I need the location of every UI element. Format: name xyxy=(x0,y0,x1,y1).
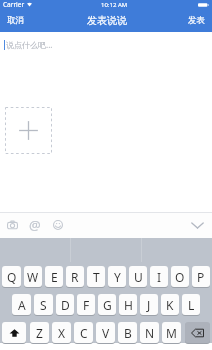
staticText: J xyxy=(147,297,151,313)
button[interactable]: I xyxy=(150,266,168,287)
button[interactable]: C xyxy=(74,322,93,343)
staticText: 说点什么吧... xyxy=(6,39,53,50)
button[interactable]: E xyxy=(45,266,63,287)
button[interactable]: D xyxy=(56,294,74,315)
staticText: F xyxy=(83,297,90,313)
staticText: @ xyxy=(29,216,41,234)
staticText: I xyxy=(157,269,162,285)
staticText: 发表说说 xyxy=(87,14,127,27)
button[interactable]: Camera xyxy=(2,212,22,238)
button[interactable]: G xyxy=(98,294,116,315)
button[interactable]: N xyxy=(140,322,159,343)
button[interactable]: K xyxy=(161,294,179,315)
staticText: A xyxy=(18,297,26,313)
staticText: C xyxy=(80,325,88,341)
staticText: O xyxy=(175,269,185,285)
staticText: N xyxy=(145,325,155,341)
button[interactable]: W xyxy=(24,266,42,287)
button[interactable]: 取消 xyxy=(0,11,33,30)
button[interactable]: A xyxy=(12,294,31,315)
staticText: Carrier xyxy=(3,0,25,9)
staticText: M xyxy=(166,325,177,341)
button[interactable]: Emoji xyxy=(48,212,68,238)
staticText: 取消 xyxy=(7,15,24,26)
staticText: W xyxy=(27,269,39,285)
button[interactable]: H xyxy=(119,294,137,315)
button[interactable]: U xyxy=(129,266,147,287)
staticText: X xyxy=(58,325,66,341)
button[interactable]: Shift xyxy=(2,322,26,343)
staticText: L xyxy=(188,297,195,313)
staticText: V xyxy=(102,325,110,341)
button[interactable]: M xyxy=(162,322,181,343)
button[interactable]: Z xyxy=(30,322,49,343)
button[interactable]: Backspace xyxy=(185,322,210,343)
button[interactable]: L xyxy=(182,294,200,315)
staticText: E xyxy=(51,269,58,285)
button[interactable]: Add photo xyxy=(5,107,52,154)
staticText: Z xyxy=(36,325,43,341)
staticText: H xyxy=(124,297,133,313)
staticText: G xyxy=(103,297,112,313)
button[interactable]: Mention xyxy=(25,212,45,238)
button[interactable]: J xyxy=(140,294,158,315)
button[interactable]: B xyxy=(118,322,137,343)
staticText: R xyxy=(71,269,79,285)
staticText: P xyxy=(197,269,205,285)
button[interactable]: X xyxy=(52,322,71,343)
button[interactable]: O xyxy=(171,266,189,287)
staticText: Y xyxy=(114,269,121,285)
button[interactable]: Hide keyboard xyxy=(184,212,211,238)
button[interactable]: Y xyxy=(108,266,126,287)
button[interactable]: P xyxy=(192,266,210,287)
button[interactable]: Q xyxy=(2,266,21,287)
button[interactable]: R xyxy=(66,266,84,287)
staticText: S xyxy=(40,297,47,313)
button[interactable]: S xyxy=(34,294,53,315)
staticText: 10:12 AM xyxy=(101,1,128,9)
button[interactable]: F xyxy=(77,294,95,315)
staticText: T xyxy=(93,269,100,285)
button[interactable]: V xyxy=(96,322,115,343)
staticText: B xyxy=(124,325,132,341)
staticText: 发表 xyxy=(188,15,205,26)
button[interactable]: 发表 xyxy=(179,11,212,30)
staticText: U xyxy=(134,269,143,285)
staticText: Q xyxy=(7,269,17,285)
staticText: D xyxy=(61,297,70,313)
button[interactable]: T xyxy=(87,266,105,287)
staticText: K xyxy=(166,297,174,313)
